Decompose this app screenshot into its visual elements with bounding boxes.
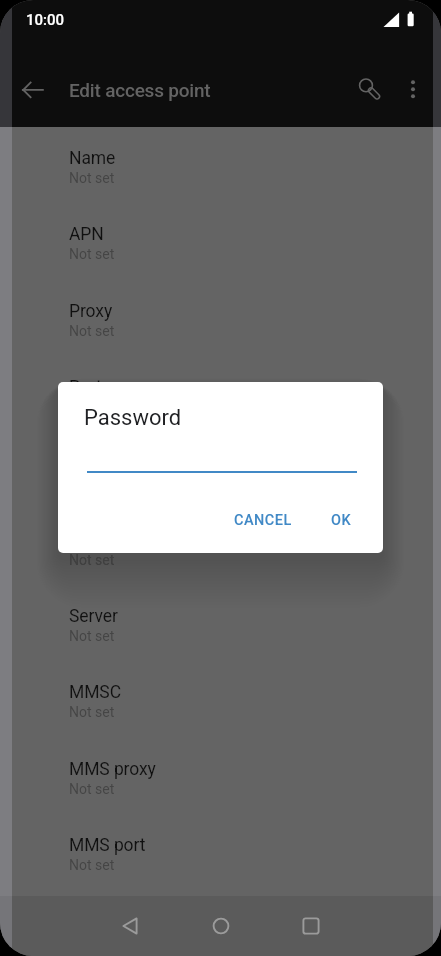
button[interactable]: MCC	[0, 891, 441, 956]
staticText: Not set	[69, 170, 115, 186]
button[interactable]: Navigate up	[9, 66, 57, 114]
button[interactable]: Search	[342, 66, 390, 114]
staticText: CANCEL	[234, 512, 292, 529]
staticText: Name	[69, 148, 116, 169]
staticText: APN	[69, 224, 104, 245]
button[interactable]: More options	[389, 66, 437, 114]
staticText: 10:00	[26, 11, 65, 29]
button[interactable]: Back	[107, 902, 155, 950]
staticText: Server	[69, 606, 118, 627]
staticText: Password	[84, 405, 182, 431]
staticText: Edit access point	[69, 79, 211, 101]
button[interactable]: APN	[0, 204, 441, 280]
button[interactable]: Home	[197, 902, 245, 950]
button[interactable]: MMSC	[0, 662, 441, 738]
staticText: Not set	[69, 323, 115, 339]
staticText: OK	[331, 512, 352, 529]
staticText: Not set	[69, 628, 115, 644]
staticText: Username	[69, 453, 148, 474]
button[interactable]: OK	[323, 502, 360, 539]
staticText: Proxy	[69, 301, 113, 322]
button[interactable]: Server	[0, 586, 441, 662]
button[interactable]: Proxy	[0, 281, 441, 357]
staticText: MMS port	[69, 835, 146, 856]
button[interactable]: Name	[0, 128, 441, 204]
button[interactable]: MMS port	[0, 815, 441, 891]
button[interactable]: Port	[0, 357, 441, 433]
staticText: Not set	[69, 704, 115, 720]
staticText: Not set	[69, 781, 115, 797]
button[interactable]: MMS proxy	[0, 739, 441, 815]
staticText: MMSC	[69, 682, 121, 703]
staticText: Not set	[69, 857, 115, 873]
staticText: Not set	[69, 399, 115, 415]
staticText: Not set	[69, 552, 115, 568]
staticText: Port	[69, 377, 102, 398]
button[interactable]: Recents	[287, 902, 335, 950]
staticText: MMS proxy	[69, 759, 156, 780]
button[interactable]: Password	[0, 510, 441, 586]
button[interactable]: CANCEL	[226, 502, 300, 539]
button[interactable]: Username	[0, 433, 441, 509]
staticText: Not set	[69, 246, 115, 262]
